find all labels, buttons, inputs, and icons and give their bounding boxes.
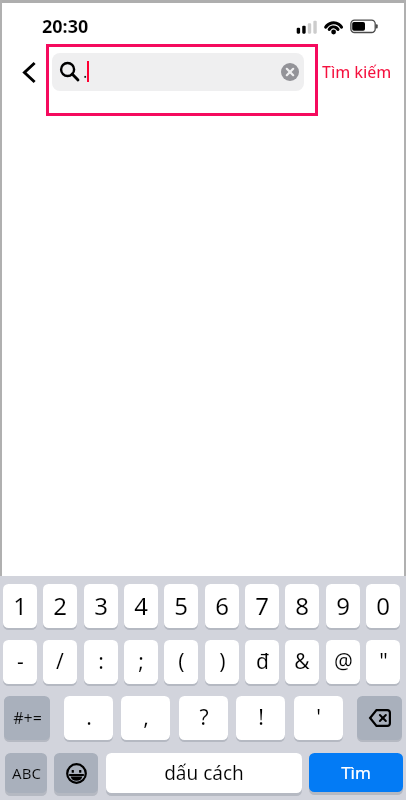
button[interactable]: -	[3, 640, 37, 684]
staticText: 7	[255, 589, 269, 622]
button[interactable]: .	[64, 696, 113, 740]
button[interactable]: 3	[84, 584, 118, 628]
staticText: !	[258, 703, 264, 732]
button[interactable]: ;	[124, 640, 158, 684]
button[interactable]: đ	[245, 640, 279, 684]
button[interactable]: 6	[205, 584, 239, 628]
other: Delete	[357, 696, 402, 740]
staticText: '	[316, 703, 321, 732]
staticText: 5	[174, 589, 188, 622]
button[interactable]: 5	[164, 584, 198, 628]
staticText: ,	[143, 703, 149, 732]
button[interactable]: @	[326, 640, 360, 684]
staticText: 6	[215, 589, 229, 622]
button[interactable]: Emoji	[54, 753, 98, 793]
button[interactable]: 4	[124, 584, 158, 628]
staticText: #+=	[13, 707, 42, 729]
button[interactable]: .	[52, 53, 304, 91]
staticText: 9	[336, 589, 350, 622]
staticText: @	[334, 647, 353, 676]
other: Emoji	[54, 753, 98, 793]
button[interactable]: #+=	[4, 696, 50, 740]
staticText: &	[294, 647, 310, 676]
button[interactable]: !	[236, 696, 285, 740]
staticText: đ	[256, 647, 269, 676]
staticText: .	[83, 61, 88, 83]
staticText: )	[219, 647, 226, 676]
button[interactable]: "	[366, 640, 400, 684]
staticText: 4	[134, 589, 148, 622]
button[interactable]: dấu cách	[106, 753, 302, 793]
button[interactable]: :	[84, 640, 118, 684]
staticText: 2	[53, 589, 67, 622]
button[interactable]: 9	[326, 584, 360, 628]
button[interactable]: )	[205, 640, 239, 684]
staticText: ;	[138, 647, 144, 676]
button[interactable]: 8	[285, 584, 319, 628]
button[interactable]: Tìm	[309, 753, 403, 792]
button[interactable]: 2	[43, 584, 77, 628]
button[interactable]: 7	[245, 584, 279, 628]
button[interactable]: Clear	[281, 63, 299, 81]
staticText: .	[86, 703, 92, 732]
button[interactable]: ABC	[5, 753, 47, 793]
staticText: 1	[13, 589, 27, 622]
staticText: :	[98, 647, 104, 676]
button[interactable]: Back	[14, 57, 44, 87]
staticText: ?	[199, 703, 209, 732]
button[interactable]: 1	[3, 584, 37, 628]
staticText: 0	[376, 589, 390, 622]
staticText: 3	[94, 589, 108, 622]
button[interactable]: ?	[179, 696, 228, 740]
staticText: /	[56, 647, 64, 676]
staticText: "	[379, 647, 388, 676]
button[interactable]: Tìm kiếm	[322, 58, 396, 86]
button[interactable]: /	[43, 640, 77, 684]
button[interactable]: (	[164, 640, 198, 684]
button[interactable]: 0	[366, 584, 400, 628]
staticText: Tìm	[341, 761, 371, 784]
staticText: (	[178, 647, 185, 676]
staticText: 8	[295, 589, 309, 622]
staticText: Tìm kiếm	[322, 61, 392, 83]
button[interactable]: Delete	[357, 696, 402, 740]
button[interactable]: '	[294, 696, 343, 740]
staticText: dấu cách	[164, 760, 244, 786]
staticText: 20:30	[42, 14, 89, 39]
staticText: -	[17, 647, 24, 676]
button[interactable]: &	[285, 640, 319, 684]
staticText: ABC	[12, 763, 41, 783]
button[interactable]: ,	[121, 696, 170, 740]
